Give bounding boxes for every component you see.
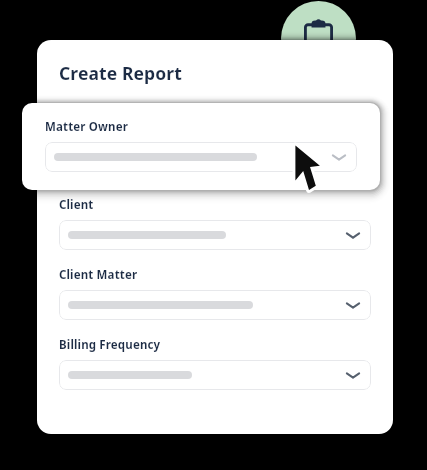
staticText: Create Report xyxy=(59,61,182,85)
staticText: Billing Frequency xyxy=(59,337,161,353)
button[interactable]: Client Matter xyxy=(59,290,371,320)
button[interactable]: Billing Frequency xyxy=(59,360,371,390)
staticText: Matter Owner xyxy=(45,119,128,135)
button[interactable]: Report xyxy=(281,1,356,76)
staticText: Client xyxy=(59,197,94,213)
staticText: Client Matter xyxy=(59,267,138,283)
button[interactable]: Matter Owner xyxy=(45,142,357,172)
button[interactable]: Client xyxy=(59,220,371,250)
